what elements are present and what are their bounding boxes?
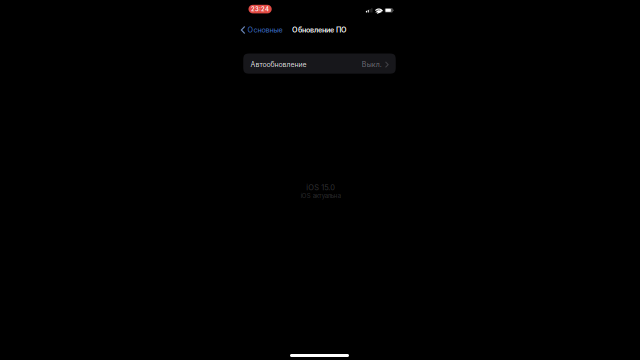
staticText: iOS актуальна bbox=[301, 192, 341, 199]
staticText: Обновление ПО bbox=[292, 26, 347, 34]
staticText: 23:24 bbox=[251, 6, 269, 13]
button[interactable]: Основные bbox=[236, 23, 282, 37]
button[interactable]: Автообновление bbox=[243, 53, 396, 74]
staticText: Выкл. bbox=[362, 60, 382, 69]
staticText: Основные bbox=[247, 26, 282, 34]
staticText: Автообновление bbox=[250, 60, 306, 69]
staticText: iOS 15.0 bbox=[306, 183, 335, 192]
